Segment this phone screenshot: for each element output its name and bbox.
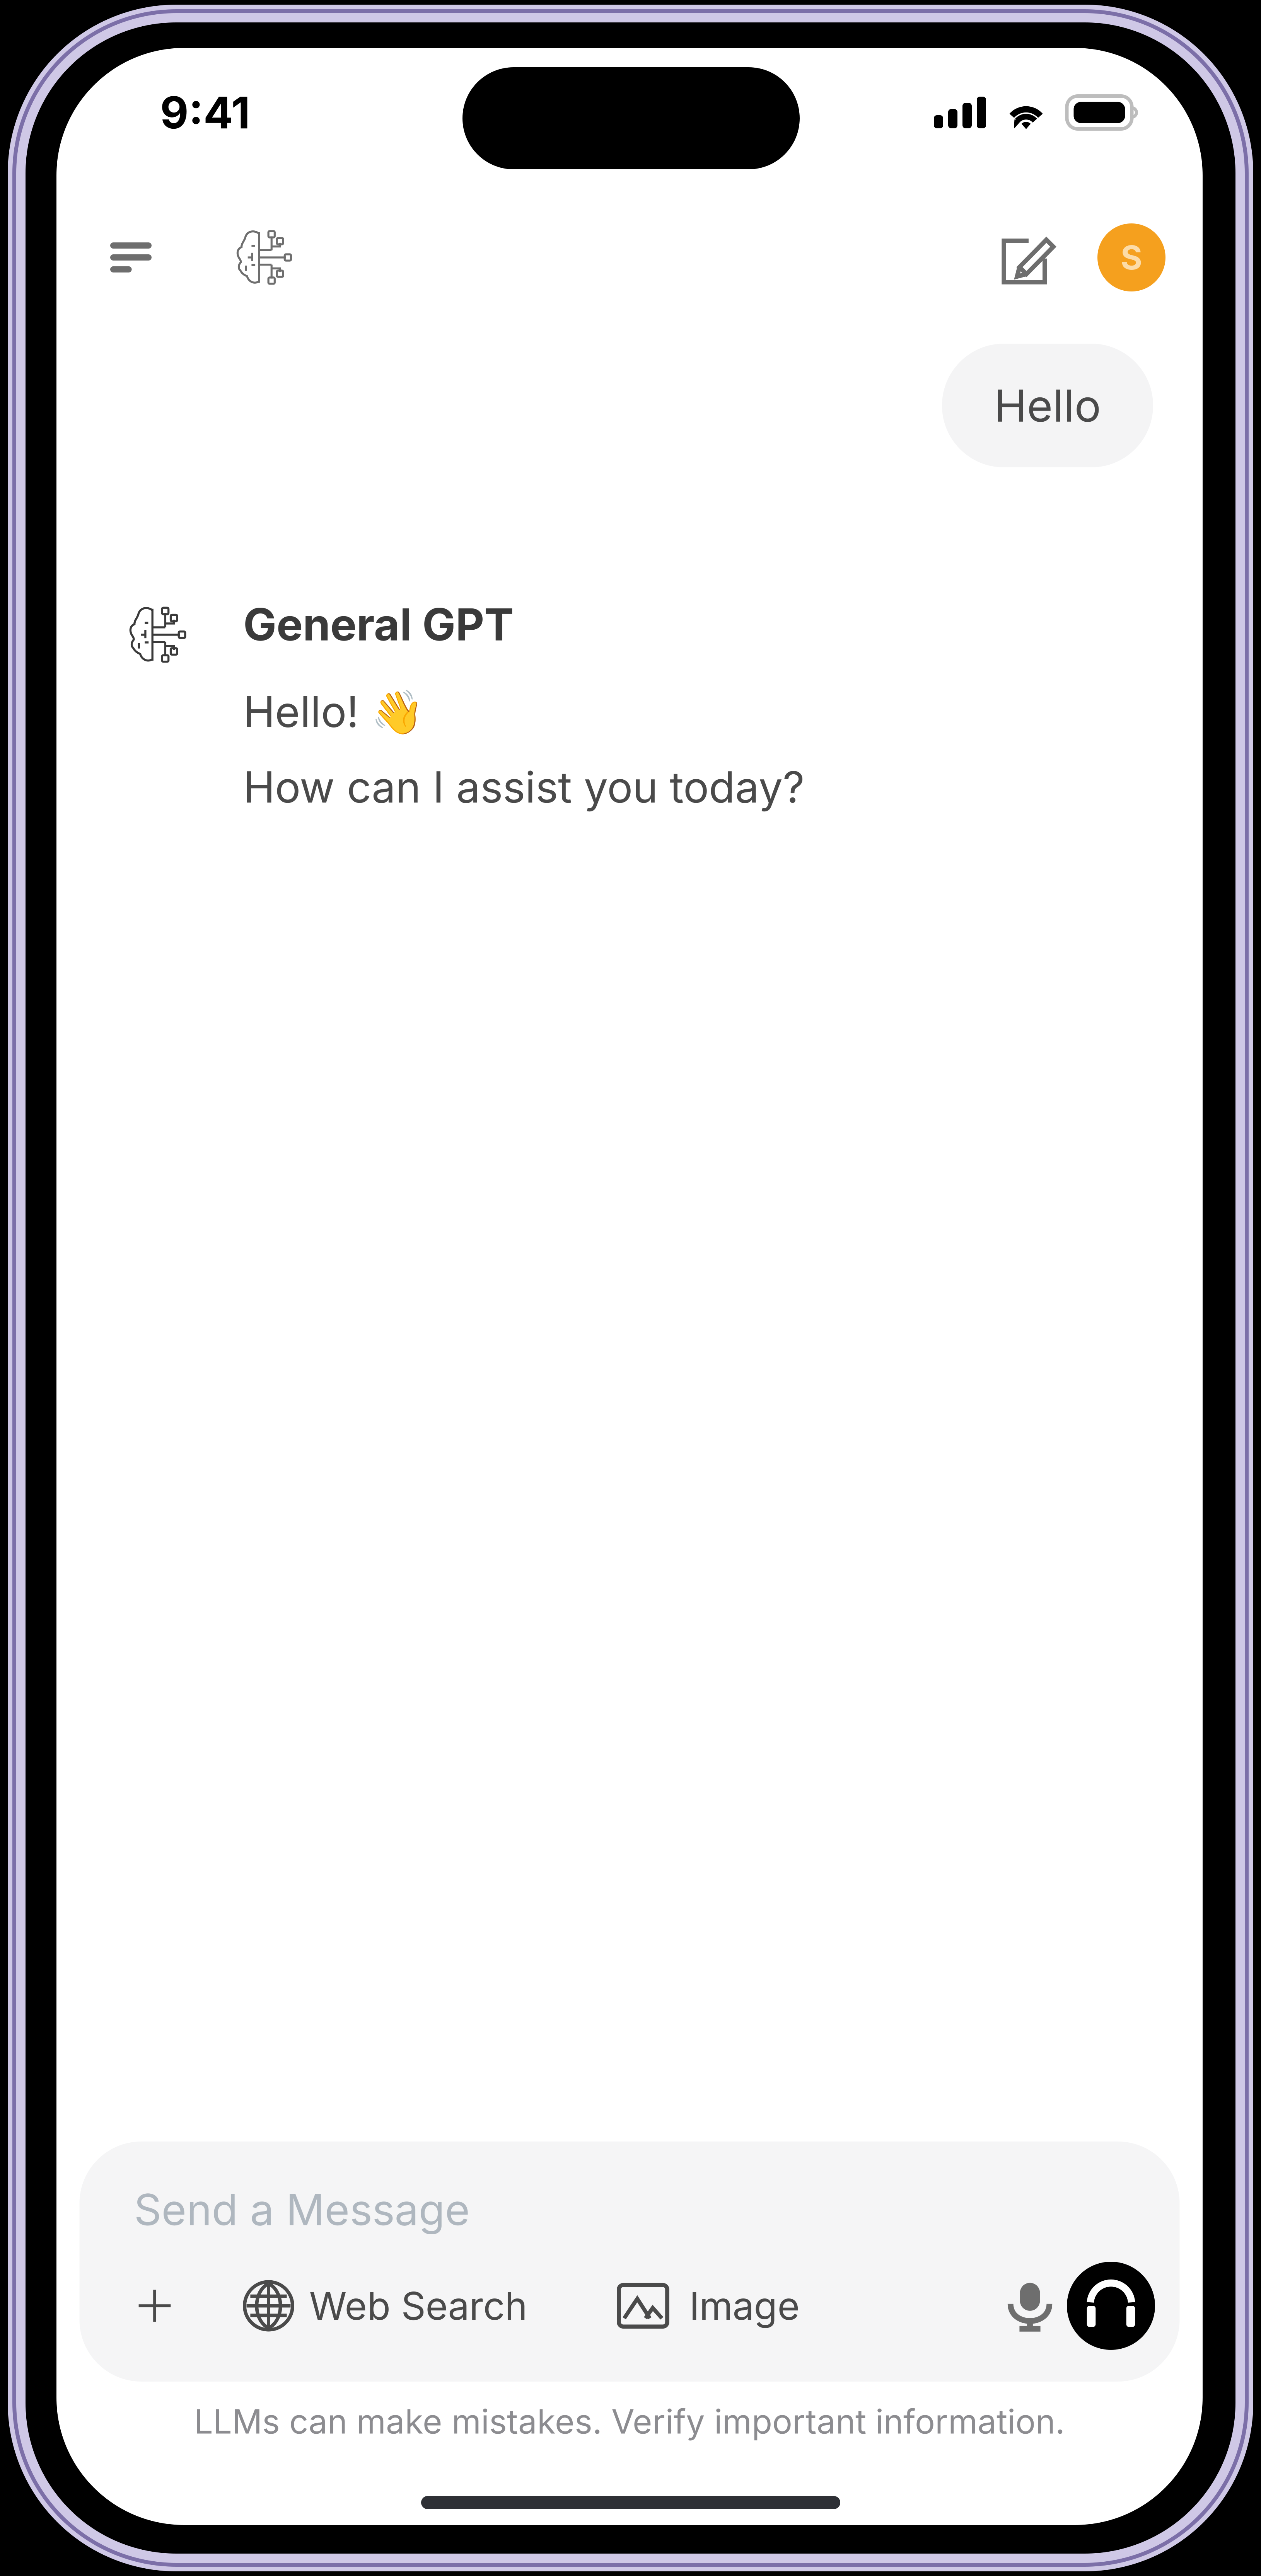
staticText: General GPT: [243, 597, 514, 651]
staticText: S: [1121, 237, 1142, 277]
button[interactable]: Choose model: [172, 213, 350, 302]
button[interactable]: Web Search: [245, 2260, 527, 2351]
staticText: Hello! 👋: [243, 686, 424, 738]
button[interactable]: Add attachment: [79, 2260, 230, 2351]
button[interactable]: New chat: [961, 213, 1096, 302]
staticText: Image: [689, 2283, 800, 2329]
staticText: 9:41: [160, 86, 250, 139]
button[interactable]: Dictate: [996, 2260, 1064, 2351]
staticText: Hello: [994, 379, 1101, 432]
button[interactable]: Menu: [89, 213, 172, 302]
button[interactable]: Voice mode: [1064, 2260, 1158, 2351]
staticText: How can I assist you today?: [243, 761, 805, 813]
staticText: Send a Message: [134, 2184, 470, 2235]
button[interactable]: Account: [1096, 213, 1167, 302]
staticText: LLMs can make mistakes. Verify important…: [194, 2401, 1065, 2442]
staticText: Web Search: [309, 2283, 527, 2329]
button[interactable]: Image: [619, 2260, 800, 2351]
